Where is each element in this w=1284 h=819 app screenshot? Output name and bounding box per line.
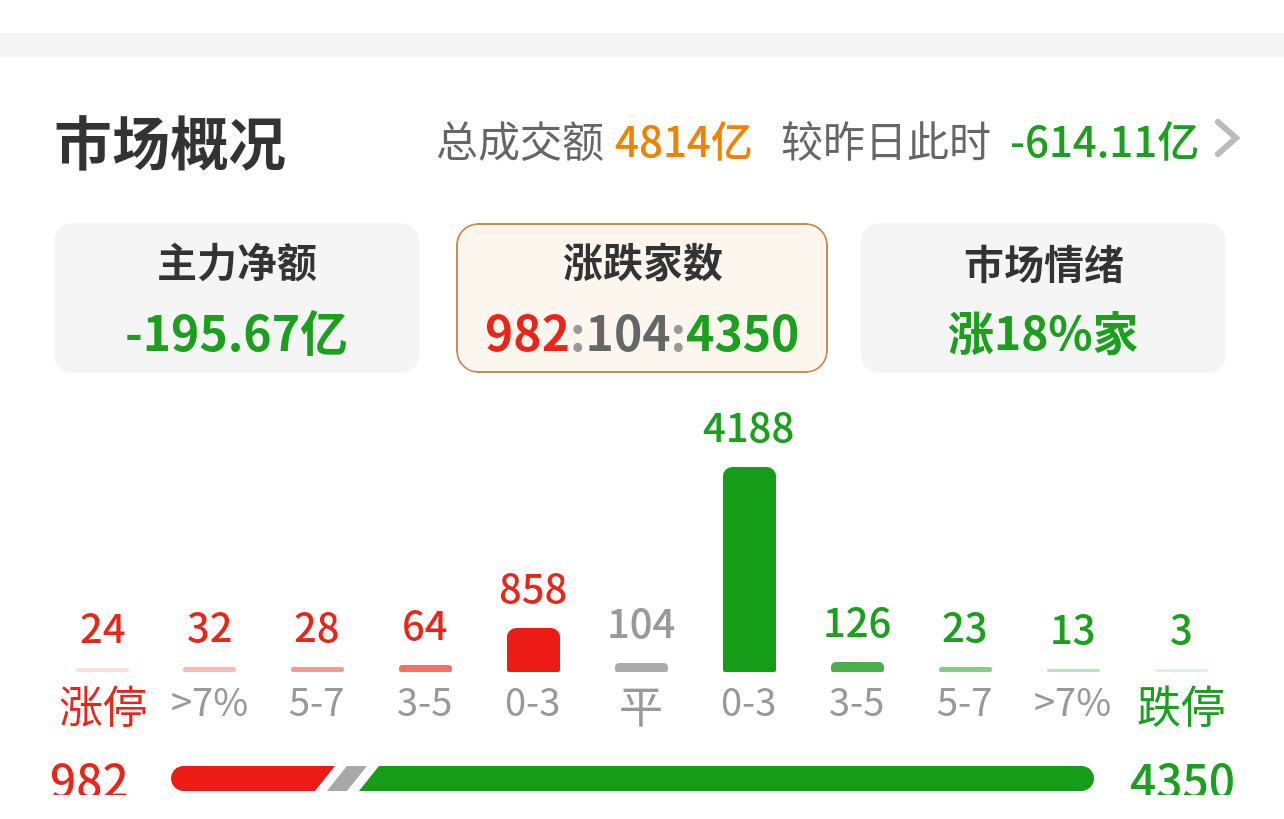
staticText: 5-7 (937, 672, 993, 727)
staticText: 平 (619, 672, 663, 736)
staticText: 13 (1050, 598, 1096, 656)
staticText: 0-3 (505, 672, 561, 727)
staticText: 跌停 (1137, 672, 1225, 736)
staticText: -195.67亿 (125, 295, 348, 365)
staticText: 涨18%家 (948, 297, 1139, 364)
staticText: 4188 (703, 396, 795, 454)
staticText: 4814亿 (615, 108, 753, 169)
staticText: 24 (80, 597, 126, 655)
staticText: 858 (499, 557, 568, 615)
staticText: >7% (171, 672, 249, 727)
staticText: 23 (942, 596, 988, 654)
button[interactable]: 市场概况 (54, 98, 1238, 178)
staticText: 涨跌家数 (563, 231, 723, 289)
staticText: 总成交额 (436, 108, 605, 169)
button[interactable]: 主力净额 (54, 223, 419, 373)
staticText: 主力净额 (157, 231, 317, 289)
staticText: 涨停 (59, 672, 147, 736)
staticText: -614.11亿 (1010, 108, 1200, 169)
staticText: 982 (50, 745, 129, 795)
staticText: 32 (187, 596, 233, 654)
staticText: >7% (1034, 672, 1112, 727)
staticText: 较昨日此时 (781, 108, 992, 169)
button[interactable]: 涨跌家数 (456, 223, 828, 373)
staticText: 982:104:4350 (485, 295, 800, 365)
staticText: 0-3 (721, 672, 777, 727)
staticText: 64 (402, 594, 448, 652)
staticText: 5-7 (289, 672, 345, 727)
staticText: 3-5 (397, 672, 453, 727)
staticText: 104 (607, 592, 676, 650)
staticText: 28 (294, 596, 340, 654)
staticText: 市场情绪 (964, 233, 1124, 291)
staticText: 3-5 (829, 672, 885, 727)
staticText: 4350 (1130, 745, 1235, 795)
staticText: 126 (823, 591, 892, 649)
button[interactable]: 市场情绪 (861, 223, 1226, 373)
staticText: 市场概况 (54, 98, 287, 178)
staticText: 3 (1170, 598, 1193, 656)
